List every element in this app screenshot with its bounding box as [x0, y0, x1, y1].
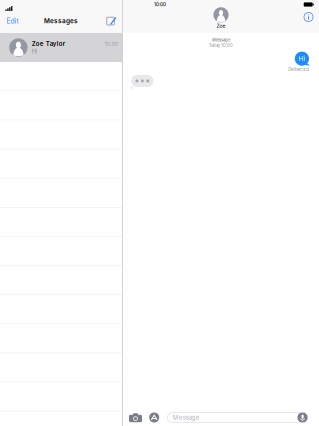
button[interactable]: Record audio — [297, 412, 308, 423]
button[interactable]: Compose — [104, 13, 120, 29]
staticText: Delivered — [288, 66, 309, 72]
staticText: Messages — [44, 17, 78, 25]
staticText: 10:00 — [154, 2, 166, 7]
staticText: Zoe Taylor — [32, 40, 65, 47]
button[interactable]: Apps — [148, 411, 161, 424]
staticText: Edit — [6, 17, 18, 25]
staticText: Today 10:00 — [209, 43, 233, 48]
button[interactable]: Edit — [3, 14, 21, 28]
button[interactable]: Zoe Taylor — [0, 33, 122, 62]
staticText: 10:00 — [104, 41, 117, 47]
staticText: Zoe — [216, 23, 225, 29]
staticText: Hi — [298, 55, 305, 63]
button[interactable]: Details — [302, 10, 315, 23]
staticText: Hi — [32, 48, 37, 55]
staticText: iMessage — [212, 37, 230, 42]
staticText: Message — [173, 414, 200, 421]
button[interactable]: Camera — [127, 411, 144, 424]
